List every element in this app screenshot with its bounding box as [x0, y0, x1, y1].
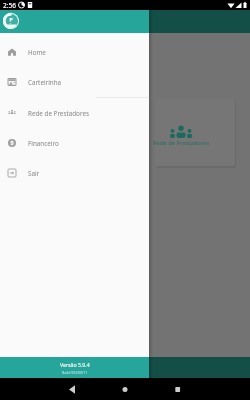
button[interactable]: Home: [0, 37, 149, 67]
button[interactable]: Sair: [0, 158, 149, 188]
staticText: Build 59230511: [62, 370, 88, 375]
button[interactable]: Rede de Prestadores: [0, 98, 149, 128]
staticText: Versão 5.9.4: [60, 361, 90, 368]
staticText: Home: [28, 48, 46, 57]
staticText: Financeiro: [28, 139, 59, 148]
button[interactable]: Rede de Prestadores: [155, 98, 235, 166]
staticText: Rede de Prestadores: [28, 109, 89, 118]
staticText: Rede de Prestadores: [141, 139, 221, 147]
staticText: Sair: [28, 169, 40, 178]
staticText: Carteirinha: [28, 78, 62, 87]
button[interactable]: Carteirinha: [0, 67, 149, 97]
staticText: 2:56: [3, 1, 16, 10]
button[interactable]: Financeiro: [0, 128, 149, 158]
button[interactable]: Profile: [3, 13, 19, 29]
